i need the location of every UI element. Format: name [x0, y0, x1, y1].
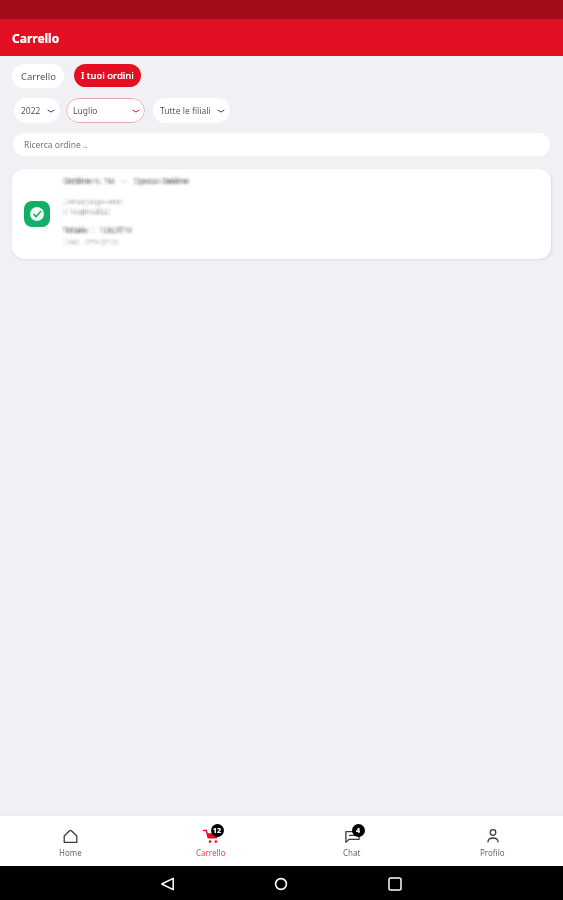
- staticText: 21 Luglio 2022: [64, 207, 111, 216]
- staticText: Stato : consegnato: [66, 235, 121, 243]
- staticText: 21 Luglio 2022: [64, 206, 111, 215]
- staticText: 21 Luglio 2022: [65, 208, 112, 217]
- staticText: Consegna prevista: [61, 198, 120, 207]
- staticText: Ordine n. 14 - Spesa Online: [62, 175, 188, 187]
- staticText: Totale : 126,97 €: [62, 222, 131, 233]
- staticText: Totale : 126,97 €: [66, 224, 135, 235]
- staticText: 21 Luglio 2022: [61, 205, 108, 214]
- button[interactable]: Home: [0, 816, 140, 866]
- staticText: Consegna prevista: [63, 198, 122, 207]
- staticText: Stato : consegnato: [65, 236, 120, 244]
- staticText: Ordine n. 14 - Spesa Online: [64, 173, 190, 185]
- staticText: 21 Luglio 2022: [63, 206, 110, 215]
- staticText: Consegna prevista: [63, 197, 122, 206]
- staticText: Consegna prevista: [64, 198, 123, 207]
- staticText: 21 Luglio 2022: [62, 207, 109, 216]
- staticText: Ordine n. 14 - Spesa Online: [65, 177, 191, 189]
- staticText: Stato : consegnato: [62, 236, 117, 244]
- staticText: Consegna prevista: [60, 197, 119, 206]
- staticText: Stato : consegnato: [61, 238, 116, 246]
- staticText: Stato : consegnato: [66, 237, 121, 245]
- staticText: Totale : 126,97 €: [65, 224, 134, 235]
- staticText: Ordine n. 14 - Spesa Online: [61, 175, 187, 187]
- staticText: Ordine n. 14 - Spesa Online: [62, 174, 188, 186]
- staticText: Totale : 126,97 €: [65, 224, 134, 235]
- button[interactable]: I tuoi ordini: [74, 64, 141, 87]
- staticText: Consegna prevista: [63, 199, 122, 208]
- staticText: 21 Luglio 2022: [65, 207, 112, 216]
- staticText: Ordine n. 14 - Spesa Online: [63, 175, 189, 187]
- staticText: Ordine n. 14 - Spesa Online: [64, 176, 190, 188]
- staticText: Consegna prevista: [65, 199, 124, 208]
- staticText: Profilo: [480, 847, 505, 858]
- staticText: Consegna prevista: [62, 197, 121, 206]
- staticText: Stato : consegnato: [64, 238, 119, 246]
- staticText: 21 Luglio 2022: [63, 206, 110, 215]
- staticText: Totale : 126,97 €: [64, 223, 133, 234]
- staticText: 21 Luglio 2022: [62, 208, 109, 217]
- staticText: Ordine n. 14 - Spesa Online: [62, 174, 188, 186]
- staticText: Stato : consegnato: [63, 235, 118, 243]
- staticText: Consegna prevista: [61, 198, 120, 207]
- staticText: Stato : consegnato: [67, 236, 122, 244]
- staticText: Consegna prevista: [62, 198, 121, 207]
- staticText: 21 Luglio 2022: [63, 207, 110, 216]
- staticText: Consegna prevista: [61, 197, 120, 206]
- staticText: 21 Luglio 2022: [65, 206, 112, 215]
- staticText: Ordine n. 14 - Spesa Online: [65, 176, 191, 188]
- staticText: 21 Luglio 2022: [61, 207, 108, 216]
- staticText: Stato : consegnato: [66, 236, 121, 244]
- button[interactable]: 4: [281, 816, 422, 866]
- staticText: Totale : 126,97 €: [62, 225, 131, 236]
- staticText: Totale : 126,97 €: [64, 224, 133, 235]
- staticText: Totale : 126,97 €: [64, 226, 133, 237]
- staticText: Consegna prevista: [61, 197, 120, 206]
- staticText: 21 Luglio 2022: [62, 205, 109, 214]
- staticText: Consegna prevista: [65, 197, 124, 206]
- staticText: Totale : 126,97 €: [62, 226, 131, 237]
- staticText: Totale : 126,97 €: [65, 222, 134, 233]
- button[interactable]: Ordine n. 14 - Spesa Online: [12, 169, 551, 259]
- staticText: Totale : 126,97 €: [66, 223, 135, 234]
- button[interactable]: 2022: [14, 98, 60, 123]
- staticText: 21 Luglio 2022: [65, 208, 112, 217]
- staticText: 21 Luglio 2022: [65, 205, 112, 214]
- staticText: Consegna prevista: [62, 197, 121, 206]
- staticText: Consegna prevista: [65, 197, 124, 206]
- button[interactable]: Tutte le filiali: [153, 98, 230, 123]
- button[interactable]: Profilo: [422, 816, 563, 866]
- staticText: Totale : 126,97 €: [63, 224, 132, 235]
- staticText: Consegna prevista: [61, 196, 120, 205]
- staticText: Totale : 126,97 €: [61, 226, 130, 237]
- staticText: Totale : 126,97 €: [60, 224, 129, 235]
- staticText: Consegna prevista: [65, 198, 124, 207]
- staticText: Consegna prevista: [62, 196, 121, 205]
- staticText: 21 Luglio 2022: [61, 206, 108, 215]
- staticText: Stato : consegnato: [61, 237, 116, 245]
- button[interactable]: Back: [153, 870, 181, 898]
- button[interactable]: Luglio: [66, 98, 145, 123]
- staticText: Ordine n. 14 - Spesa Online: [63, 174, 189, 186]
- staticText: 21 Luglio 2022: [60, 208, 107, 217]
- staticText: Totale : 126,97 €: [61, 224, 130, 235]
- staticText: 21 Luglio 2022: [64, 207, 111, 216]
- staticText: Stato : consegnato: [64, 238, 119, 246]
- button[interactable]: Home: [267, 870, 295, 898]
- staticText: Ordine n. 14 - Spesa Online: [63, 174, 189, 186]
- button[interactable]: Carrello: [12, 64, 64, 88]
- staticText: Stato : consegnato: [62, 239, 117, 247]
- staticText: Stato : consegnato: [65, 237, 120, 245]
- button[interactable]: Ricerca ordine ..: [13, 133, 550, 156]
- button[interactable]: 12: [140, 816, 281, 866]
- staticText: 21 Luglio 2022: [61, 208, 108, 217]
- staticText: 21 Luglio 2022: [63, 206, 110, 215]
- staticText: Stato : consegnato: [66, 237, 121, 245]
- staticText: Stato : consegnato: [62, 235, 117, 243]
- staticText: Ordine n. 14 - Spesa Online: [61, 174, 187, 186]
- button[interactable]: Recents: [381, 870, 409, 898]
- staticText: 21 Luglio 2022: [63, 208, 110, 217]
- staticText: Consegna prevista: [63, 198, 122, 207]
- staticText: Ordine n. 14 - Spesa Online: [61, 175, 187, 187]
- staticText: 21 Luglio 2022: [62, 206, 109, 215]
- staticText: Ordine n. 14 - Spesa Online: [63, 174, 189, 186]
